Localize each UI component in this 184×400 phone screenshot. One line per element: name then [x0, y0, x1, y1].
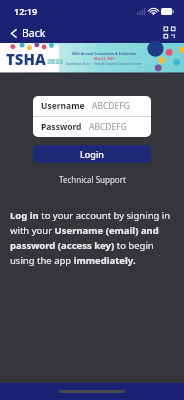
button[interactable]: Technical Support	[53, 172, 132, 187]
staticText: 2025	[47, 57, 64, 67]
button[interactable]: Password	[33, 117, 151, 137]
staticText: May 13, 2025	[94, 57, 115, 61]
staticText: Login	[80, 148, 104, 160]
staticText: Technical Support	[59, 174, 126, 185]
button[interactable]: Login	[33, 145, 151, 163]
staticText: ABCDEFG	[92, 100, 130, 112]
staticText: TSHA	[6, 49, 46, 69]
staticText: Back	[22, 26, 46, 40]
button[interactable]: Back	[6, 24, 50, 42]
staticText: ABCDEFG	[89, 121, 127, 133]
staticText: Username	[41, 100, 85, 112]
staticText: San Antonio, Texas | Henry B. Gonzalez C…	[66, 62, 142, 66]
button[interactable]: TSHA	[0, 43, 184, 74]
staticText: Log in to your account by signing in wit…	[10, 209, 174, 267]
staticText: 68th Annual Convention & Exhibition	[72, 51, 137, 56]
button[interactable]: Username	[33, 96, 151, 116]
staticText: Password	[41, 121, 82, 133]
staticText: 12:19	[14, 5, 38, 17]
button[interactable]: Scan QR code	[162, 25, 177, 40]
